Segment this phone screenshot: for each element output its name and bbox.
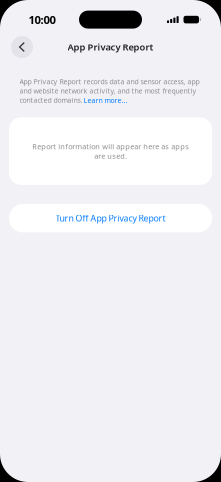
staticText: App Privacy Report records data and sens… (19, 77, 199, 105)
staticText: Report information will appear here as a… (32, 141, 189, 161)
button[interactable]: Learn more... (83, 96, 127, 105)
button[interactable]: Back (11, 36, 33, 58)
staticText: Learn more... (83, 96, 127, 105)
staticText: 10:00 (28, 12, 55, 27)
button[interactable]: Turn Off App Privacy Report (9, 204, 212, 232)
staticText: Turn Off App Privacy Report (55, 212, 165, 224)
staticText: App Privacy Report (67, 41, 153, 53)
